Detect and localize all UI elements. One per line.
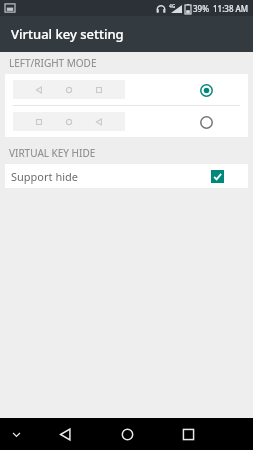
staticText: Virtual key setting <box>11 25 124 43</box>
button[interactable]: Recent apps <box>175 421 201 447</box>
staticText: 11:38 AM <box>213 3 249 14</box>
staticText: 39% <box>193 3 209 14</box>
button[interactable]: Selected mode <box>195 79 217 101</box>
staticText: Support hide <box>11 169 79 184</box>
staticText: 4G <box>169 3 176 10</box>
button[interactable]: Select mode <box>5 106 248 137</box>
button[interactable]: Support hide <box>5 164 248 188</box>
button[interactable]: Select mode <box>195 111 217 133</box>
staticText: LEFT/RIGHT MODE <box>9 56 97 70</box>
button[interactable]: Hide navigation bar <box>7 425 25 443</box>
button[interactable]: Selected mode <box>5 74 248 105</box>
staticText: VIRTUAL KEY HIDE <box>9 146 96 160</box>
button[interactable]: Back <box>52 421 78 447</box>
button[interactable]: Home <box>114 421 140 447</box>
button[interactable]: Support hide checkbox <box>207 166 227 186</box>
